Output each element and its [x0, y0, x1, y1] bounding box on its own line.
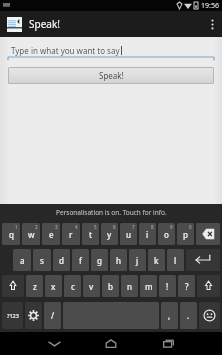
staticText: /: [51, 310, 55, 321]
staticText: n: [127, 281, 133, 292]
staticText: q: [9, 229, 14, 240]
staticText: s: [40, 255, 44, 266]
button[interactable]: v: [83, 275, 100, 297]
staticText: Speak!: [29, 17, 60, 31]
staticText: ?123: [7, 312, 19, 319]
other: App icon: [7, 17, 22, 32]
staticText: b: [108, 281, 113, 292]
button[interactable]: f: [72, 249, 89, 271]
button[interactable]: Home: [98, 332, 124, 355]
staticText: d: [59, 255, 64, 266]
button[interactable]: Back: [41, 332, 67, 355]
button[interactable]: ,: [161, 302, 178, 329]
staticText: 5: [94, 224, 97, 230]
staticText: e: [49, 229, 54, 240]
staticText: o: [164, 229, 169, 240]
button[interactable]: t: [82, 223, 99, 245]
button[interactable]: Emoji: [199, 302, 220, 329]
button[interactable]: k: [148, 249, 165, 271]
button[interactable]: n: [121, 275, 138, 297]
staticText: z: [33, 281, 37, 292]
staticText: w: [28, 229, 35, 240]
button[interactable]: g: [91, 249, 108, 271]
button[interactable]: Shift: [2, 275, 24, 297]
staticText: u: [126, 229, 132, 240]
staticText: k: [154, 255, 159, 266]
button[interactable]: e: [42, 223, 60, 245]
button[interactable]: b: [102, 275, 119, 297]
button[interactable]: Type in what you want to say: [8, 43, 214, 61]
staticText: .: [187, 310, 190, 321]
button[interactable]: q: [2, 223, 20, 245]
button[interactable]: i: [139, 223, 156, 245]
staticText: h: [116, 255, 122, 266]
staticText: 7: [132, 224, 135, 230]
button[interactable]: u: [120, 223, 137, 245]
button[interactable]: p: [177, 223, 194, 245]
staticText: y: [107, 229, 112, 240]
staticText: c: [71, 281, 75, 292]
staticText: ?: [185, 281, 189, 292]
button[interactable]: x: [45, 275, 62, 297]
button[interactable]: Enter: [186, 249, 220, 271]
button[interactable]: h: [110, 249, 127, 271]
button[interactable]: !: [159, 275, 176, 297]
staticText: 1: [15, 224, 18, 230]
button[interactable]: r: [62, 223, 80, 245]
button[interactable]: z: [26, 275, 43, 297]
staticText: 3: [55, 224, 58, 230]
button[interactable]: Shift right: [197, 275, 220, 297]
staticText: a: [20, 255, 25, 266]
button[interactable]: y: [101, 223, 118, 245]
button[interactable]: j: [129, 249, 146, 271]
staticText: f: [79, 255, 82, 266]
button[interactable]: Backspace: [196, 223, 220, 245]
staticText: 8: [151, 224, 154, 230]
button[interactable]: ?: [178, 275, 195, 297]
staticText: Speak!: [99, 70, 124, 81]
staticText: ,: [168, 310, 171, 321]
button[interactable]: c: [64, 275, 81, 297]
staticText: 19:56: [201, 1, 219, 11]
staticText: t: [89, 229, 93, 240]
button[interactable]: o: [158, 223, 175, 245]
button[interactable]: l: [167, 249, 184, 271]
staticText: v: [89, 281, 94, 292]
staticText: Type in what you want to say: [11, 45, 120, 56]
button[interactable]: .: [180, 302, 197, 329]
staticText: !: [166, 281, 169, 292]
staticText: l: [174, 255, 177, 266]
button[interactable]: Settings: [25, 302, 42, 329]
staticText: p: [183, 229, 188, 240]
staticText: r: [69, 229, 73, 240]
button[interactable]: d: [53, 249, 70, 271]
staticText: 6: [113, 224, 116, 230]
staticText: 9: [170, 224, 173, 230]
staticText: g: [97, 255, 102, 266]
button[interactable]: Personalisation is on. Touch for info.: [0, 204, 222, 221]
button[interactable]: Speak!: [8, 67, 214, 84]
staticText: 0: [189, 224, 192, 230]
staticText: Personalisation is on. Touch for info.: [56, 208, 167, 217]
button[interactable]: s: [33, 249, 51, 271]
button[interactable]: a: [13, 249, 31, 271]
button[interactable]: w: [22, 223, 40, 245]
button[interactable]: m: [140, 275, 157, 297]
staticText: 4: [75, 224, 78, 230]
button[interactable]: More options: [202, 11, 222, 37]
staticText: m: [145, 281, 153, 292]
button[interactable]: ?123: [2, 302, 23, 329]
button[interactable]: Recent apps: [155, 332, 181, 355]
button[interactable]: /: [44, 302, 61, 329]
staticText: i: [146, 229, 149, 240]
staticText: 2: [35, 224, 38, 230]
staticText: j: [136, 255, 139, 266]
staticText: x: [51, 281, 56, 292]
